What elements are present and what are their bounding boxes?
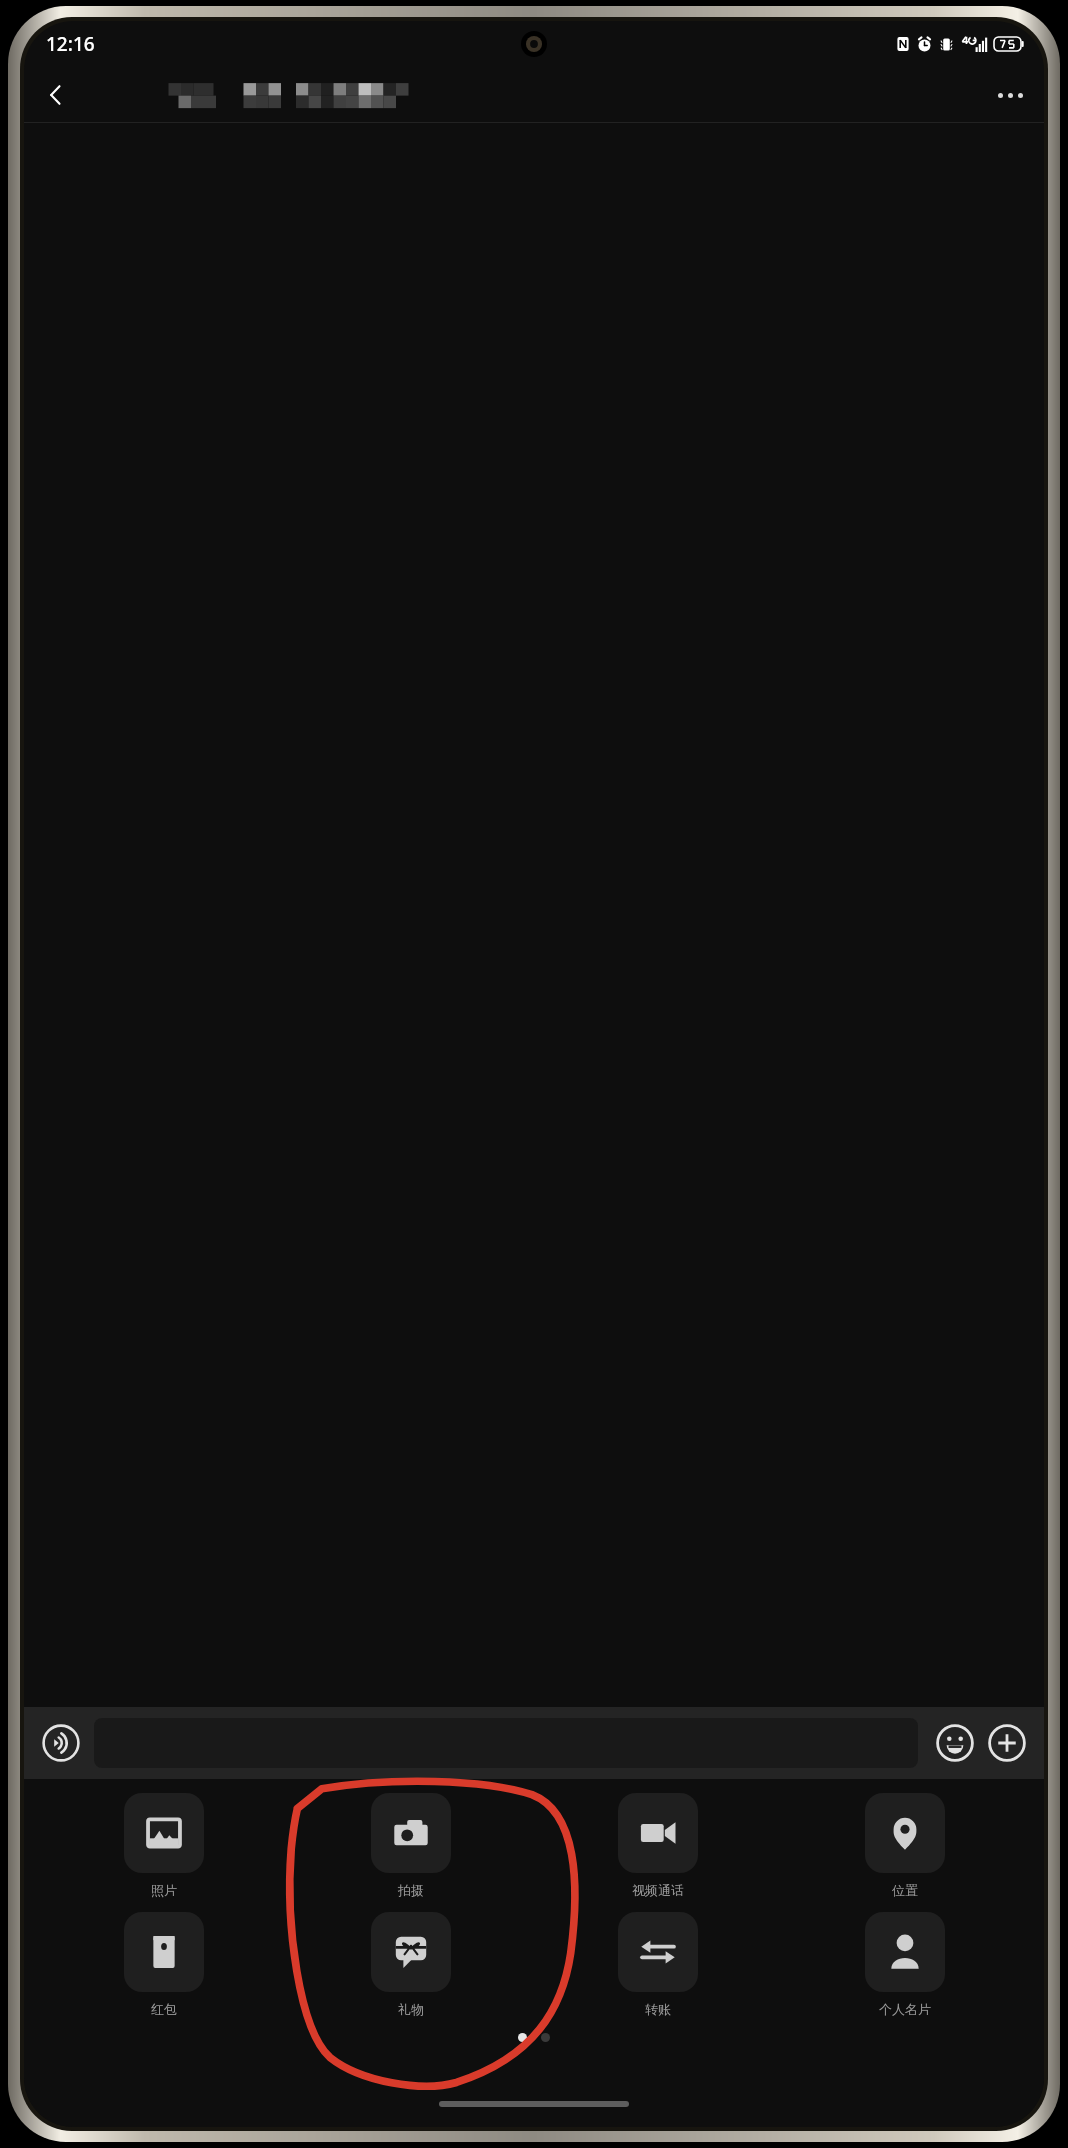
staticText: 视频通话 [632, 1882, 684, 1898]
button[interactable]: 礼物 [287, 1912, 534, 2017]
staticText: 拍摄 [398, 1882, 424, 1898]
button[interactable]: More options [986, 71, 1034, 119]
button[interactable]: Voice input [38, 1720, 84, 1766]
staticText: 礼物 [398, 2001, 424, 2017]
staticText: 12:16 [46, 31, 95, 57]
button[interactable]: More [984, 1720, 1030, 1766]
button[interactable]: 位置 [781, 1793, 1028, 1898]
button[interactable]: Back [32, 71, 80, 119]
staticText: 位置 [892, 1882, 918, 1898]
button[interactable]: 照片 [40, 1793, 287, 1898]
staticText: 照片 [151, 1882, 177, 1898]
button[interactable]: 视频通话 [534, 1793, 781, 1898]
staticText: 红包 [151, 2001, 177, 2017]
staticText: 个人名片 [879, 2001, 931, 2017]
staticText: 转账 [645, 2001, 671, 2017]
button[interactable]: 拍摄 [287, 1793, 534, 1898]
button[interactable]: 转账 [534, 1912, 781, 2017]
button[interactable]: 红包 [40, 1912, 287, 2017]
button[interactable]: Emoji [932, 1720, 978, 1766]
button[interactable]: 个人名片 [781, 1912, 1028, 2017]
